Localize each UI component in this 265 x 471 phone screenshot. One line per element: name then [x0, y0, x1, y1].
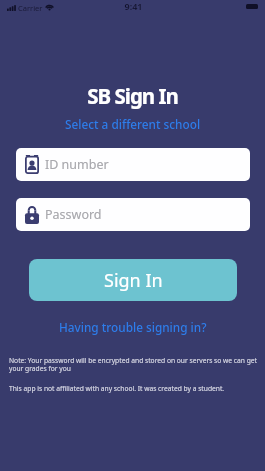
staticText: This app is not affiliated with any scho…	[9, 384, 261, 393]
other: Password	[25, 206, 39, 224]
staticText: Select a different school	[65, 116, 201, 132]
other: ID number	[25, 155, 39, 174]
other: Wi-Fi	[45, 3, 54, 10]
staticText: Note: Your password will be encrypted an…	[9, 356, 261, 373]
button[interactable]: Having trouble signing in?	[51, 316, 215, 338]
button[interactable]: Password	[16, 198, 250, 231]
staticText: Carrier	[18, 3, 43, 13]
staticText: 9:41	[1, 0, 265, 12]
staticText: Having trouble signing in?	[59, 319, 207, 335]
button[interactable]: ID number	[16, 148, 250, 181]
other: Cellular signal	[7, 5, 16, 11]
staticText: SB Sign In	[0, 82, 265, 110]
other: Battery	[246, 4, 258, 9]
button[interactable]: Select a different school	[57, 113, 209, 135]
button[interactable]: Sign In	[29, 259, 237, 301]
staticText: ID number	[45, 156, 109, 173]
staticText: Sign In	[104, 268, 163, 293]
staticText: Password	[45, 206, 102, 223]
